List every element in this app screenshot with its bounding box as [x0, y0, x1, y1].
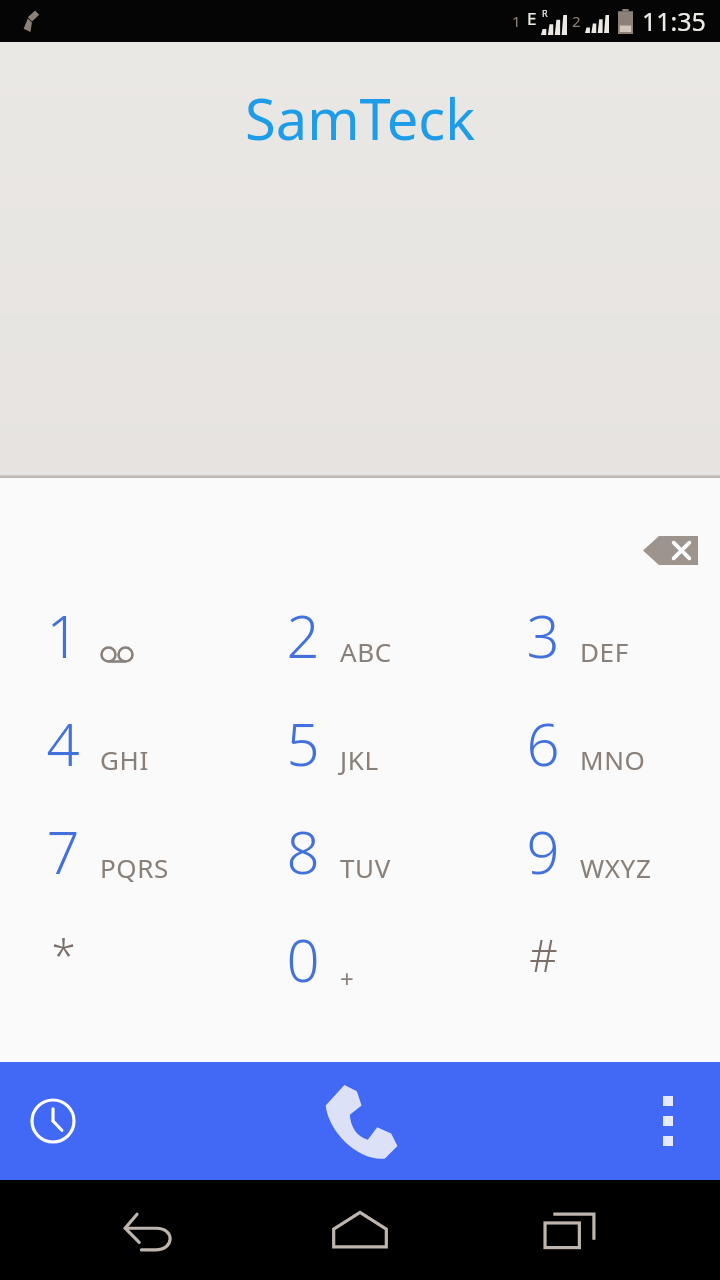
button[interactable]: 1	[0, 581, 240, 689]
staticText: MNO	[580, 742, 646, 777]
staticText: 1	[46, 596, 80, 675]
staticText: WXYZ	[580, 850, 652, 885]
staticText: 7	[46, 812, 80, 891]
button[interactable]: #	[480, 905, 720, 1013]
staticText: SamTeck	[245, 80, 476, 156]
staticText: R	[542, 7, 548, 19]
staticText: *	[51, 925, 76, 985]
staticText: JKL	[340, 742, 379, 777]
button[interactable]: More options	[640, 1086, 696, 1156]
button[interactable]: Call log	[18, 1086, 88, 1156]
staticText: GHI	[100, 742, 149, 777]
button[interactable]: Back	[90, 1185, 210, 1275]
staticText: PQRS	[100, 850, 169, 885]
staticText: 4	[46, 704, 80, 783]
staticText: DEF	[580, 634, 629, 669]
staticText: 2	[572, 11, 581, 31]
staticText: TUV	[340, 850, 391, 885]
staticText: 3	[526, 596, 560, 675]
button[interactable]: Backspace	[634, 526, 706, 574]
button[interactable]: 4	[0, 689, 240, 797]
button[interactable]: Home	[300, 1185, 420, 1275]
staticText: ABC	[340, 634, 392, 669]
staticText: 11:35	[642, 4, 706, 38]
staticText: 8	[286, 812, 320, 891]
staticText: E	[527, 7, 537, 30]
button[interactable]: 5	[240, 689, 480, 797]
staticText: 2	[286, 596, 320, 675]
button[interactable]: 7	[0, 797, 240, 905]
staticText: #	[529, 925, 558, 985]
staticText: 5	[286, 704, 320, 783]
button[interactable]: 0	[240, 905, 480, 1013]
button[interactable]: *	[0, 905, 240, 1013]
staticText: 6	[526, 704, 560, 783]
staticText: 9	[526, 812, 560, 891]
staticText: +	[340, 962, 354, 995]
button[interactable]: 2	[240, 581, 480, 689]
button[interactable]: 6	[480, 689, 720, 797]
button[interactable]: 8	[240, 797, 480, 905]
button[interactable]: Dial	[305, 1071, 415, 1171]
button[interactable]: Recent apps	[510, 1185, 630, 1275]
staticText: 1	[512, 11, 521, 31]
button[interactable]: 9	[480, 797, 720, 905]
staticText: 0	[286, 920, 320, 999]
button[interactable]: 3	[480, 581, 720, 689]
